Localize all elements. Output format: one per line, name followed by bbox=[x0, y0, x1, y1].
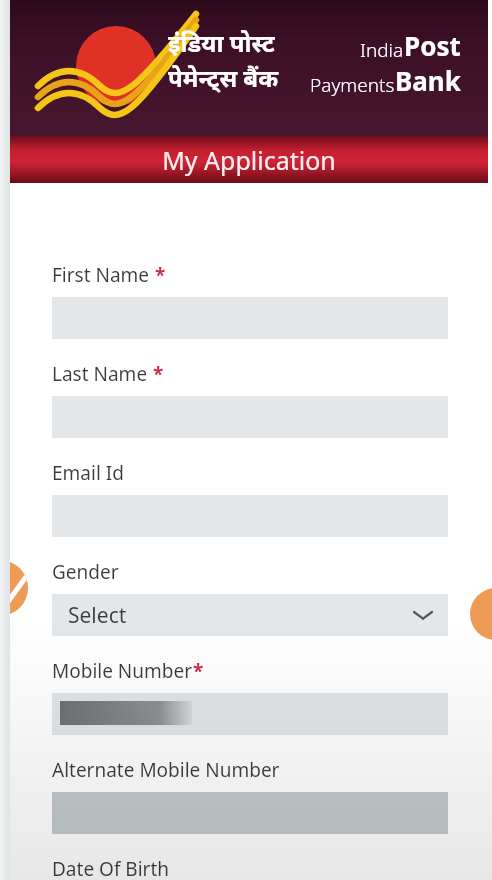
staticText: Gender bbox=[52, 559, 119, 585]
staticText: Bank bbox=[395, 63, 461, 98]
staticText: First Name bbox=[52, 262, 150, 288]
staticText: Mobile Number bbox=[52, 658, 193, 684]
staticText: * bbox=[148, 361, 164, 387]
staticText: Payments bbox=[310, 72, 395, 98]
staticText: Alternate Mobile Number bbox=[52, 757, 280, 783]
staticText: Select bbox=[68, 601, 127, 630]
button[interactable] bbox=[52, 693, 448, 735]
button[interactable]: Select bbox=[52, 594, 448, 636]
staticText: पेमेन्ट्स बैंक bbox=[168, 61, 279, 94]
button[interactable]: Verified bbox=[0, 560, 28, 616]
button[interactable]: Help bbox=[470, 588, 492, 640]
staticText: * bbox=[150, 262, 166, 288]
staticText: Date Of Birth bbox=[52, 856, 170, 880]
other: Open gender dropdown bbox=[414, 609, 432, 621]
staticText: Email Id bbox=[52, 460, 124, 486]
staticText: * bbox=[193, 658, 204, 684]
staticText: India bbox=[360, 37, 404, 63]
staticText: My Application bbox=[162, 143, 336, 177]
staticText: Post bbox=[404, 28, 461, 63]
staticText: Last Name bbox=[52, 361, 148, 387]
staticText: इंडिया पोस्ट bbox=[168, 26, 275, 59]
